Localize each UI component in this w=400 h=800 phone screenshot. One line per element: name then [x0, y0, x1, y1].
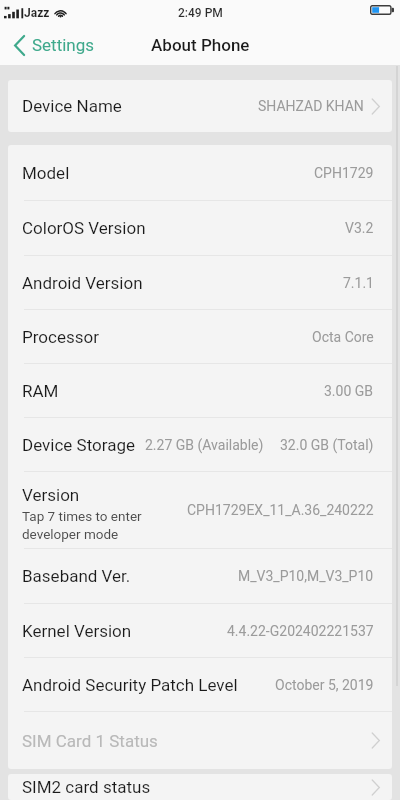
staticText: CPH1729EX_11_A.36_240222: [187, 502, 374, 518]
staticText: Jazz: [24, 6, 50, 20]
staticText: 32.0 GB (Total): [280, 437, 374, 453]
button[interactable]: SIM2 card status: [8, 774, 392, 800]
staticText: M_V3_P10,M_V3_P10: [238, 568, 374, 584]
staticText: Tap 7 times to enter developer mode: [22, 508, 142, 542]
button[interactable]: Android Version: [8, 256, 392, 309]
staticText: Kernel Version: [22, 621, 132, 641]
staticText: Version: [22, 485, 80, 505]
button[interactable]: ColorOS Version: [8, 201, 392, 255]
staticText: Processor: [22, 327, 99, 347]
staticText: CPH1729: [314, 165, 374, 181]
staticText: RAM: [22, 381, 59, 401]
button[interactable]: Processor: [8, 310, 392, 363]
staticText: Device Storage: [22, 435, 135, 455]
button[interactable]: Android Security Patch Level: [8, 658, 392, 711]
staticText: About Phone: [151, 35, 250, 55]
staticText: Model: [22, 163, 70, 183]
staticText: Android Version: [22, 273, 143, 293]
staticText: SIM2 card status: [22, 777, 151, 797]
staticText: Device Name: [22, 96, 122, 116]
staticText: 3.00 GB: [324, 383, 374, 399]
staticText: 4.4.22-G202402221537: [227, 623, 374, 639]
staticText: V3.2: [345, 220, 374, 236]
staticText: 2.27 GB (Available): [145, 437, 264, 453]
staticText: SIM Card 1 Status: [22, 731, 158, 751]
button[interactable]: Device Name: [8, 80, 392, 132]
staticText: 7.1.1: [343, 275, 374, 291]
button[interactable]: SIM Card 1 Status: [8, 712, 392, 769]
staticText: Settings: [32, 35, 95, 55]
button[interactable]: Settings: [0, 25, 105, 65]
button[interactable]: RAM: [8, 364, 392, 417]
staticText: ColorOS Version: [22, 218, 146, 238]
staticText: Baseband Ver.: [22, 566, 131, 586]
button[interactable]: Model: [8, 145, 392, 200]
button[interactable]: Kernel Version: [8, 604, 392, 657]
staticText: October 5, 2019: [275, 677, 374, 693]
staticText: Android Security Patch Level: [22, 675, 238, 695]
staticText: 2:49 PM: [178, 6, 223, 20]
staticText: Octa Core: [312, 329, 374, 345]
button[interactable]: Version: [8, 472, 392, 548]
button[interactable]: Device Storage: [8, 418, 392, 471]
staticText: SHAHZAD KHAN: [258, 98, 364, 114]
button[interactable]: Baseband Ver.: [8, 549, 392, 603]
